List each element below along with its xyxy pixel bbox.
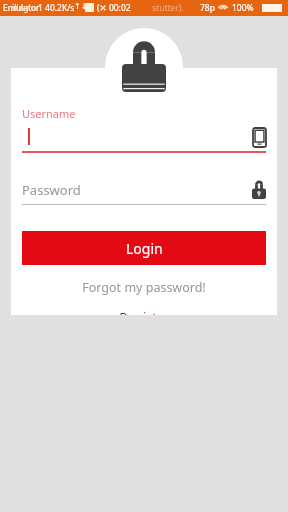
staticText: 1 40.2K/s (38, 2, 75, 14)
staticText: Login (126, 239, 163, 258)
staticText: Register (119, 308, 170, 315)
button[interactable]: Forgot my password! (22, 279, 266, 296)
button[interactable]: Register (22, 308, 266, 315)
button[interactable]: Phone number (22, 125, 266, 151)
button[interactable]: Login (22, 231, 266, 265)
staticText: stutter). (152, 2, 184, 14)
staticText: Username (22, 106, 76, 121)
staticText: illegio (12, 2, 36, 14)
staticText: 100% (232, 2, 254, 14)
other: Password (252, 181, 266, 199)
button[interactable]: Password (22, 179, 266, 201)
staticText: Emulator (3, 2, 40, 14)
staticText: (✕ 00:02 (97, 2, 131, 14)
staticText: Password (22, 181, 81, 199)
staticText: Forgot my password! (82, 279, 206, 296)
staticText: 78p (200, 2, 215, 14)
other: Phone number (253, 128, 266, 147)
staticText: ↑↓ (74, 2, 88, 11)
